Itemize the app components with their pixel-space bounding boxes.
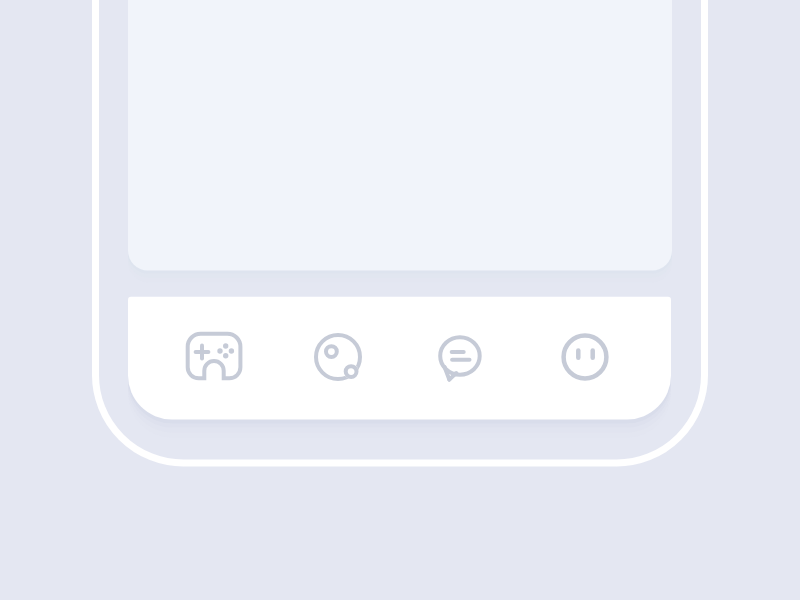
- button[interactable]: [543, 315, 627, 399]
- button[interactable]: [172, 314, 256, 398]
- button[interactable]: [296, 315, 380, 399]
- button[interactable]: [418, 314, 502, 398]
